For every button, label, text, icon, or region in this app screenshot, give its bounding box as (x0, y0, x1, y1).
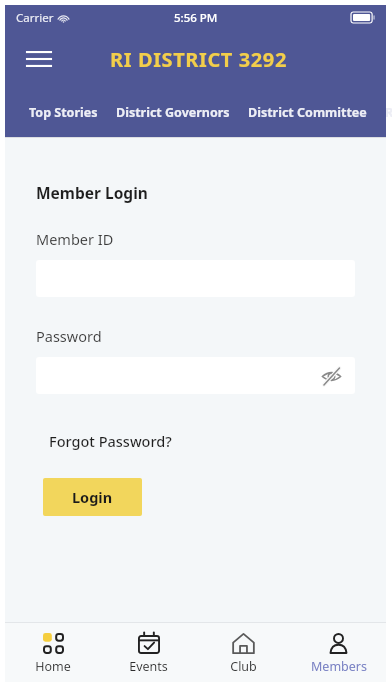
staticText: Members (311, 658, 367, 675)
button[interactable]: District Committee (248, 96, 367, 129)
staticText: Top Stories (29, 104, 98, 121)
button[interactable]: Show password (36, 357, 355, 394)
staticText: Home (35, 658, 71, 675)
button[interactable]: Club (196, 623, 291, 682)
button[interactable]: Home (5, 623, 101, 682)
staticText: 5:56 PM (174, 10, 218, 26)
staticText: Club (230, 658, 257, 675)
staticText: RI DISTRICT 3292 (110, 46, 287, 73)
button[interactable]: Forgot Password? (49, 431, 172, 451)
staticText: Login (72, 487, 113, 507)
button[interactable]: District Governors (116, 96, 230, 129)
staticText: District Governors (116, 104, 230, 121)
button[interactable]: Open navigation menu (19, 39, 59, 79)
button[interactable]: Login (43, 478, 142, 516)
staticText: Member Login (36, 182, 148, 203)
button[interactable]: Events (101, 623, 196, 682)
button[interactable]: Top Stories (29, 96, 98, 129)
button[interactable]: Show password (316, 361, 346, 391)
staticText: Forgot Password? (49, 431, 172, 451)
staticText: Member ID (36, 229, 114, 249)
button[interactable]: Members (291, 623, 386, 682)
staticText: Password (36, 326, 102, 346)
staticText: Events (129, 658, 168, 675)
staticText: District Committee (248, 104, 367, 121)
staticText: Carrier (16, 10, 54, 26)
